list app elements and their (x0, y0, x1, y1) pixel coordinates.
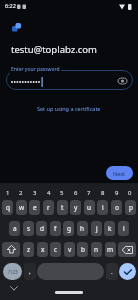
button[interactable]: Next (106, 166, 133, 180)
staticText: d (40, 224, 44, 233)
button[interactable]: 8 (97, 186, 109, 199)
button[interactable]: . (106, 263, 118, 280)
button[interactable]: 4 (43, 186, 55, 199)
staticText: v (68, 245, 72, 254)
staticText: q (6, 203, 10, 212)
staticText: h (80, 224, 85, 233)
button[interactable]: 1 (2, 186, 14, 199)
button[interactable]: b (77, 242, 88, 257)
button[interactable]: , (24, 263, 36, 280)
staticText: 8 (101, 189, 105, 197)
staticText: y (74, 203, 78, 212)
staticText: c (54, 245, 58, 254)
staticText: 2 (19, 189, 23, 197)
button[interactable]: Set up using a certificate (0, 103, 138, 113)
staticText: i (102, 203, 104, 212)
button[interactable]: r (43, 200, 54, 215)
button[interactable]: z (23, 242, 34, 257)
staticText: 0 (128, 189, 132, 197)
staticText: Next (113, 170, 126, 177)
button[interactable]: x (37, 242, 48, 257)
staticText: g (67, 224, 71, 233)
staticText: k (108, 224, 112, 233)
staticText: u (87, 203, 92, 212)
staticText: 4 (47, 189, 51, 197)
button[interactable]: n (91, 242, 102, 257)
button[interactable]: k (104, 221, 115, 236)
button[interactable]: u (84, 200, 95, 215)
button[interactable]: 9 (111, 186, 123, 199)
staticText: 5 (60, 189, 64, 197)
staticText: t (61, 203, 64, 212)
button[interactable]: 3 (29, 186, 41, 199)
button[interactable] (118, 242, 136, 257)
button[interactable]: d (36, 221, 47, 236)
staticText: e (33, 203, 37, 212)
staticText: l (123, 224, 125, 233)
staticText: Enter your password (11, 66, 60, 73)
button[interactable]: i (97, 200, 108, 215)
staticText: a (13, 224, 17, 233)
button[interactable]: m (105, 242, 116, 257)
staticText: testu@toplabz.com (11, 43, 97, 56)
button[interactable]: l (118, 221, 129, 236)
staticText: n (94, 245, 99, 254)
staticText: x (41, 245, 45, 254)
button[interactable]: h (77, 221, 88, 236)
button[interactable]: q (2, 200, 13, 215)
staticText: z (27, 245, 31, 254)
button[interactable]: f (50, 221, 61, 236)
button[interactable]: ?123 (3, 263, 22, 280)
button[interactable]: v (64, 242, 75, 257)
staticText: ?123 (8, 269, 18, 275)
staticText: w (19, 203, 25, 212)
staticText: 6 (74, 189, 78, 197)
button[interactable]: c (50, 242, 61, 257)
staticText: Set up using a certificate (37, 105, 101, 112)
staticText: 3 (33, 189, 37, 197)
staticText: b (81, 245, 85, 254)
button[interactable]: p (125, 200, 136, 215)
button[interactable] (119, 263, 136, 280)
staticText: 1 (6, 189, 10, 197)
button[interactable] (37, 263, 104, 280)
button[interactable]: s (23, 221, 34, 236)
staticText: r (47, 203, 50, 212)
staticText: 6:22 (5, 2, 16, 9)
staticText: p (129, 203, 133, 212)
staticText: . (111, 268, 113, 276)
button[interactable]: e (29, 200, 40, 215)
staticText: m (107, 245, 114, 254)
button[interactable]: 6 (70, 186, 82, 199)
staticText: s (27, 224, 31, 233)
staticText: 7 (87, 189, 91, 197)
button[interactable]: 2 (15, 186, 27, 199)
button[interactable]: o (111, 200, 122, 215)
button[interactable]: 5 (56, 186, 68, 199)
button[interactable]: g (63, 221, 74, 236)
staticText: 9 (115, 189, 119, 197)
staticText: j (96, 224, 98, 233)
button[interactable]: 7 (83, 186, 95, 199)
staticText: , (29, 268, 31, 276)
button[interactable]: y (70, 200, 81, 215)
button[interactable] (6, 70, 133, 90)
button[interactable]: w (16, 200, 27, 215)
button[interactable]: j (91, 221, 102, 236)
staticText: o (115, 203, 119, 212)
button[interactable]: a (9, 221, 20, 236)
button[interactable]: 0 (124, 186, 136, 199)
staticText: f (54, 224, 57, 233)
button[interactable] (2, 242, 20, 257)
button[interactable]: t (57, 200, 68, 215)
